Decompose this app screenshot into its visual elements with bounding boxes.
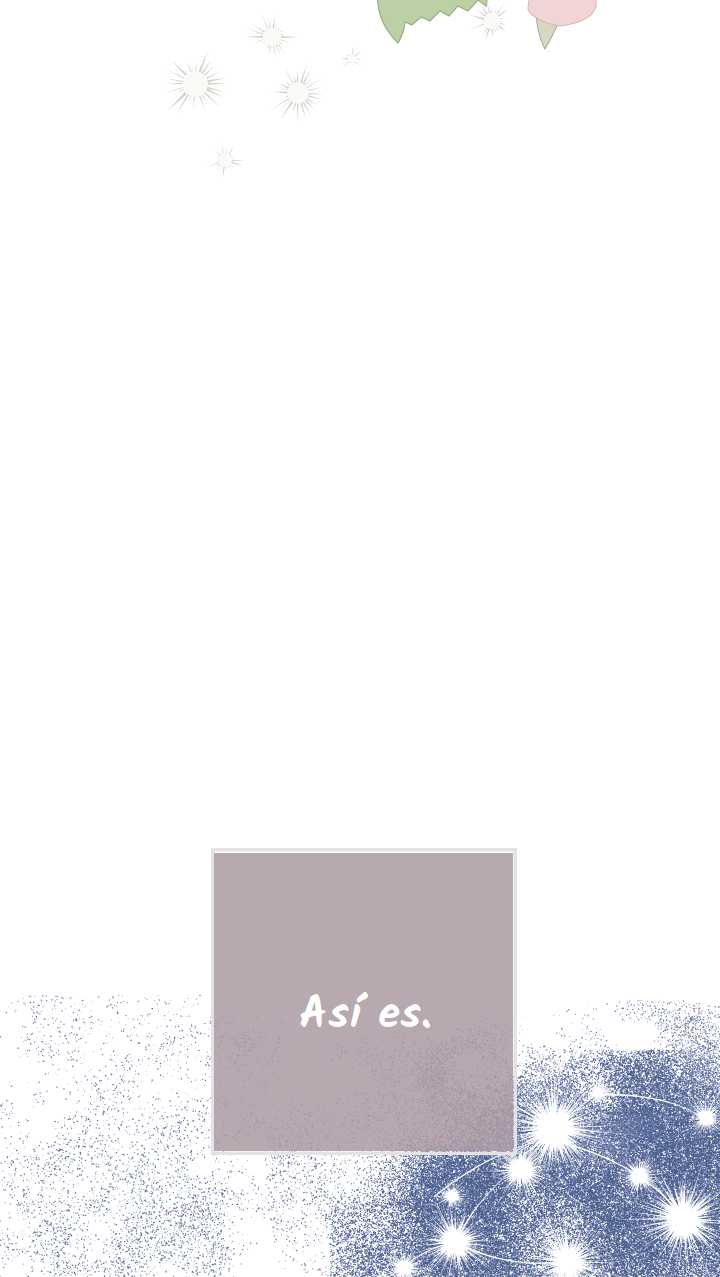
staticText: Así es. — [299, 980, 432, 1052]
